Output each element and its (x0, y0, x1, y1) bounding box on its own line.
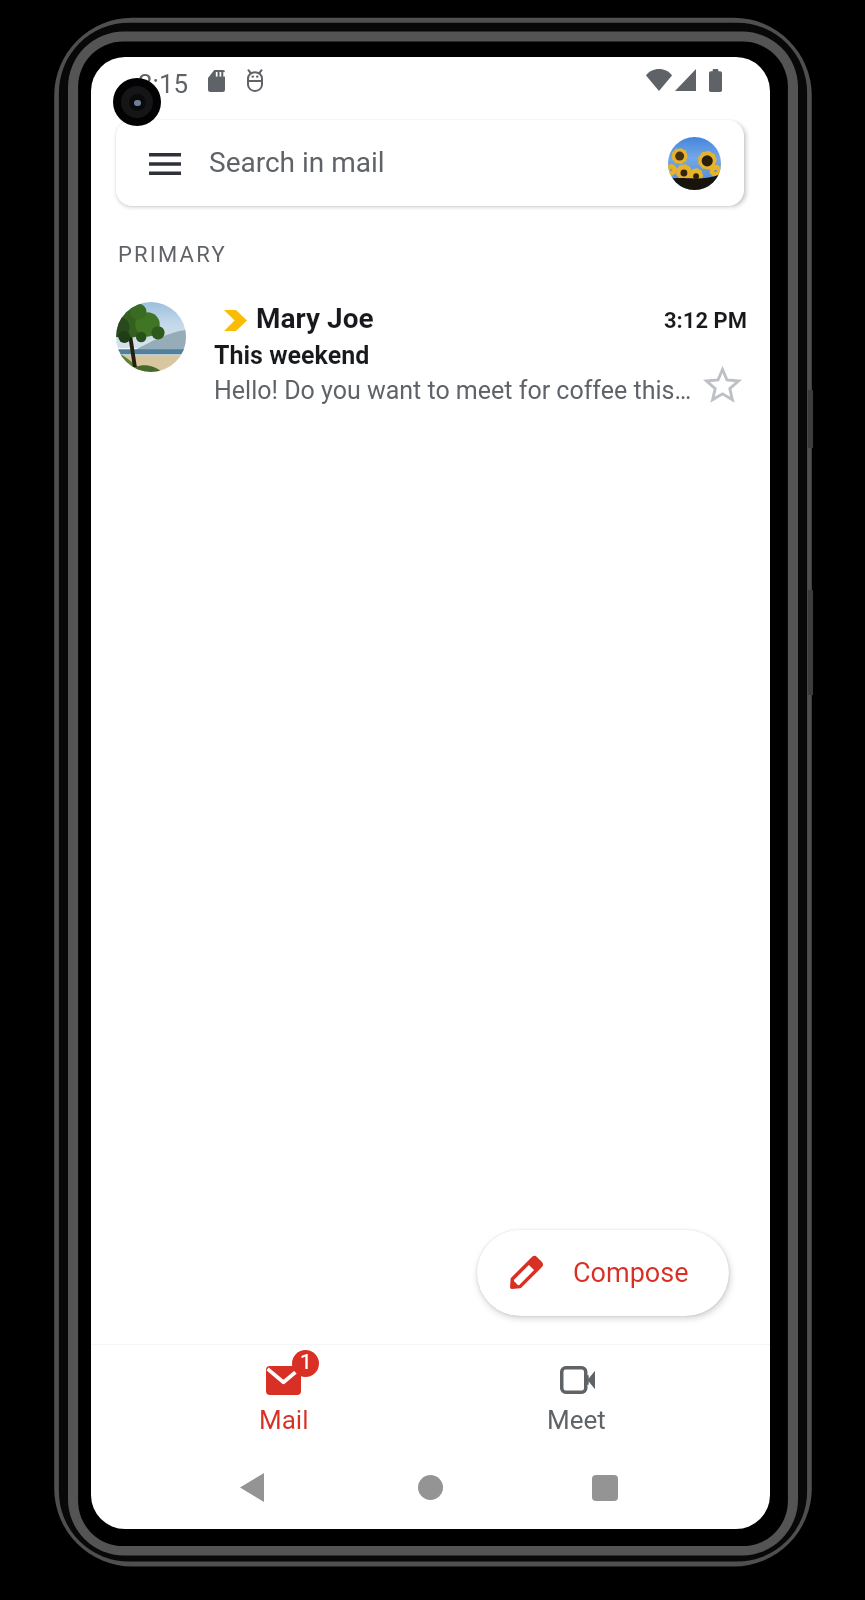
other: Account (668, 137, 721, 190)
staticText: Meet (547, 1405, 606, 1435)
button[interactable]: Open navigation drawer (116, 120, 744, 206)
button[interactable]: Mary Joe (91, 289, 770, 419)
staticText: Hello! Do you want to meet for coffee th… (214, 376, 692, 405)
button[interactable]: Home (395, 1444, 465, 1529)
button[interactable]: Back (217, 1444, 287, 1529)
staticText: 3:15 (138, 69, 189, 99)
staticText: Compose (573, 1257, 689, 1289)
button[interactable]: Compose (477, 1230, 729, 1316)
button[interactable]: 1 (196, 1346, 370, 1444)
staticText: 1 (300, 1350, 312, 1375)
staticText: This weekend (214, 341, 370, 370)
staticText: PRIMARY (118, 242, 227, 268)
button[interactable]: Meet (491, 1346, 665, 1444)
staticText: Search in mail (209, 146, 385, 179)
staticText: 3:12 PM (664, 308, 748, 334)
staticText: Mary Joe (256, 302, 374, 335)
button[interactable]: Recent apps (570, 1444, 640, 1529)
other: Open navigation drawer (149, 153, 181, 175)
other: Star (705, 368, 740, 402)
staticText: Mail (259, 1405, 309, 1435)
